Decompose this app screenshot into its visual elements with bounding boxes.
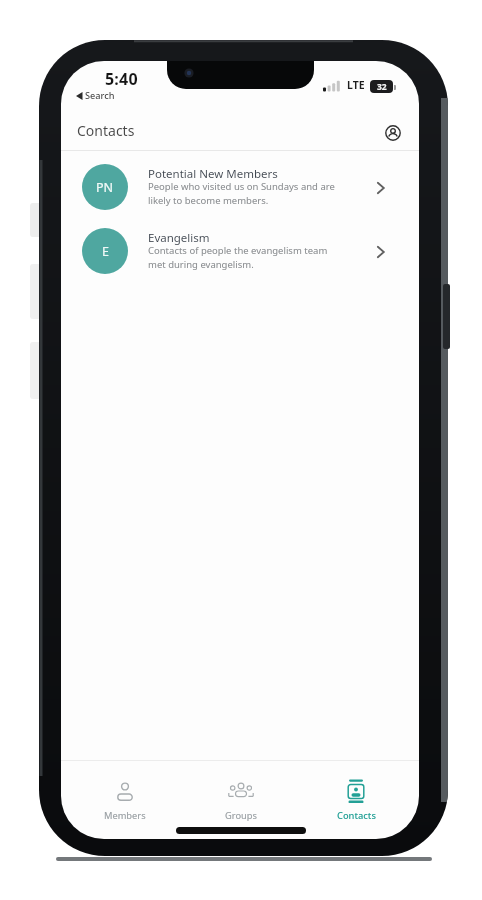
staticText: Search bbox=[85, 89, 115, 102]
staticText: Members bbox=[104, 809, 146, 822]
staticText: LTE bbox=[347, 78, 365, 92]
staticText: Groups bbox=[225, 809, 257, 822]
button[interactable]: E bbox=[61, 219, 419, 283]
staticText: Contacts bbox=[77, 121, 135, 140]
staticText: Evangelism bbox=[148, 230, 210, 246]
staticText: 32 bbox=[377, 81, 387, 93]
staticText: Contacts bbox=[337, 809, 376, 822]
staticText: 5:40 bbox=[105, 68, 138, 90]
staticText: Contacts of people the evangelism team m… bbox=[148, 244, 328, 271]
button[interactable]: Members bbox=[75, 773, 175, 821]
staticText: E bbox=[102, 243, 109, 260]
button[interactable]: Groups bbox=[191, 773, 291, 821]
staticText: PN bbox=[96, 179, 114, 196]
button[interactable]: Contacts bbox=[306, 773, 406, 821]
button[interactable] bbox=[380, 120, 406, 146]
staticText: People who visited us on Sundays and are… bbox=[148, 180, 335, 207]
button[interactable]: PN bbox=[61, 155, 419, 219]
staticText: Potential New Members bbox=[148, 166, 278, 182]
